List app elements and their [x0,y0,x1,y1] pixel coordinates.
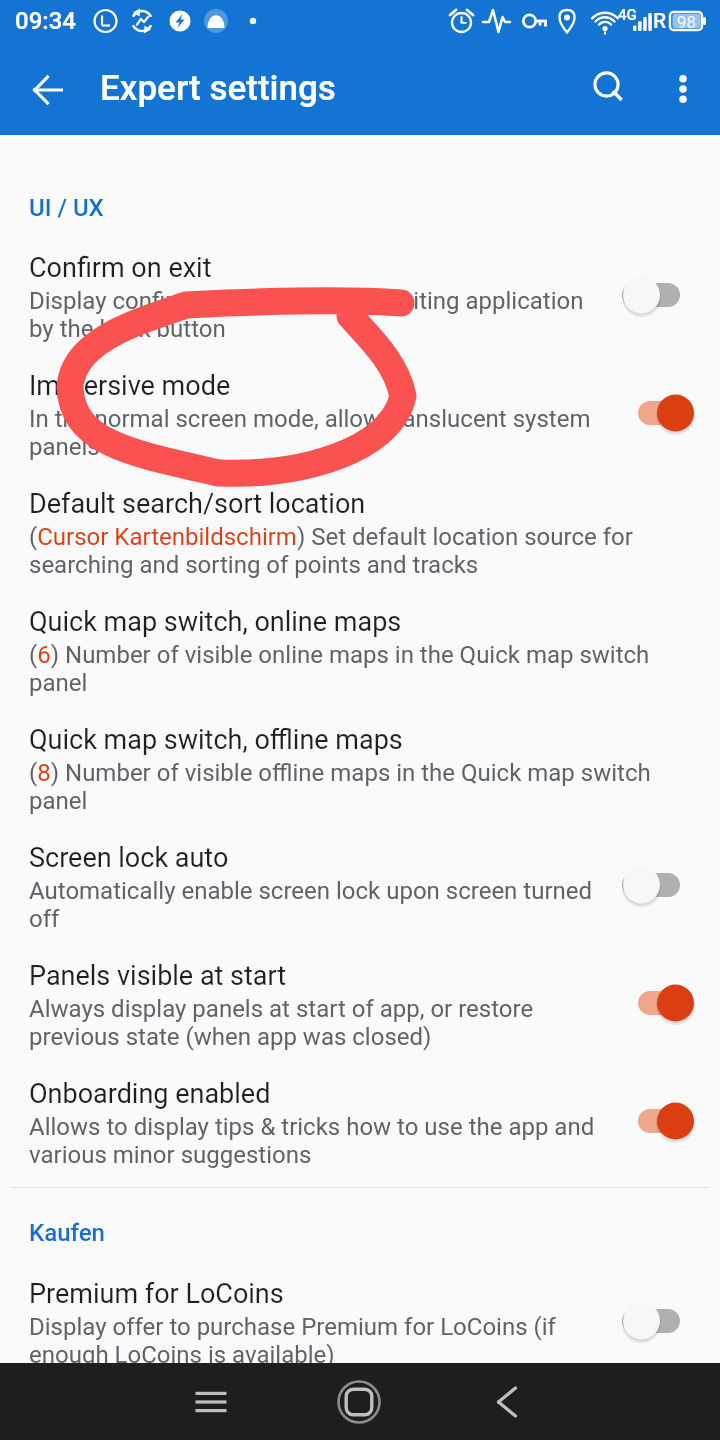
button[interactable]: More options [643,49,720,129]
staticText: (Cursor Kartenbildschirm) Set default lo… [29,523,689,579]
button[interactable]: Quick map switch, online maps [0,596,720,714]
button[interactable]: Disable setting [601,1071,701,1171]
staticText: Quick map switch, offline maps [29,724,403,756]
staticText: Expert settings [100,68,336,109]
staticText: Display confirmation dialog when exiting… [29,287,609,343]
staticText: 4G [618,6,637,24]
button[interactable]: Enable setting [601,1271,701,1371]
button[interactable]: Onboarding enabled [0,1068,720,1187]
staticText: 09:34 [15,7,76,35]
staticText: Quick map switch, online maps [29,606,402,638]
staticText: Kaufen [29,1219,105,1247]
staticText: Premium for LoCoins [29,1278,284,1310]
staticText: R [653,9,667,34]
staticText: Always display panels at start of app, o… [29,995,609,1051]
button[interactable]: Immersive mode [0,360,720,478]
button[interactable]: Disable setting [601,953,701,1053]
button[interactable]: Enable setting [601,245,701,345]
staticText: Display offer to purchase Premium for Lo… [29,1313,609,1363]
staticText: Default search/sort location [29,488,366,520]
button[interactable]: Premium for LoCoins [0,1247,720,1363]
staticText: Confirm on exit [29,252,212,284]
staticText: Allows to display tips & tricks how to u… [29,1113,609,1169]
button[interactable]: Default search/sort location [0,478,720,596]
staticText: Panels visible at start [29,960,287,992]
staticText: UI / UX [29,194,104,222]
staticText: Screen lock auto [29,842,229,874]
staticText: In the normal screen mode, allow translu… [29,405,609,461]
staticText: Onboarding enabled [29,1078,271,1110]
button[interactable]: Quick map switch, offline maps [0,714,720,832]
button[interactable]: Home [285,1363,433,1440]
button[interactable]: Enable setting [601,835,701,935]
staticText: Automatically enable screen lock upon sc… [29,877,609,933]
button[interactable]: Disable setting [601,363,701,463]
button[interactable]: Search [567,48,647,128]
staticText: Immersive mode [29,370,231,402]
button[interactable]: Recent apps [137,1363,285,1440]
button[interactable]: Navigate up [8,50,87,129]
button[interactable]: Panels visible at start [0,950,720,1068]
button[interactable]: Back [433,1363,581,1440]
staticText: (8) Number of visible offline maps in th… [29,759,689,815]
staticText: 98 [677,12,697,32]
staticText: (6) Number of visible online maps in the… [29,641,689,697]
button[interactable]: Screen lock auto [0,832,720,950]
button[interactable]: Confirm on exit [0,242,720,360]
